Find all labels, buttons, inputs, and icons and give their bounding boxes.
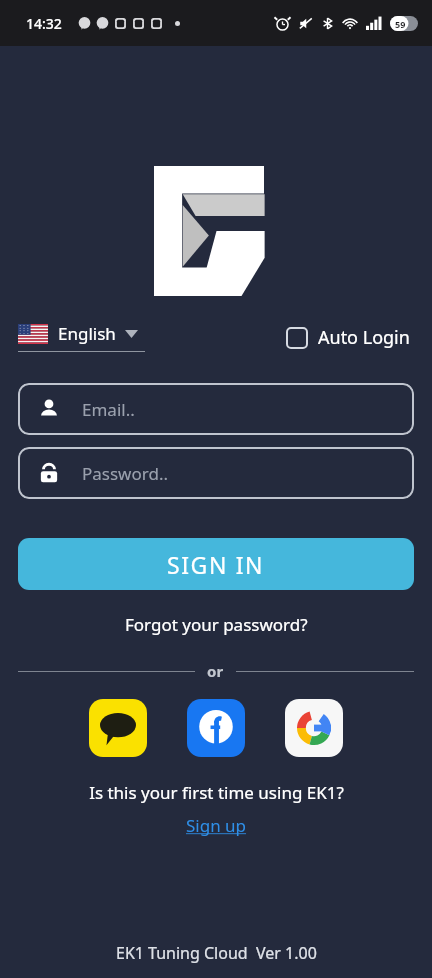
button[interactable]: SIGN IN [18,538,414,590]
staticText: English [58,322,116,345]
staticText: Auto Login [318,325,410,350]
button[interactable]: Sign in with Facebook [187,699,245,757]
button[interactable]: English [18,320,145,354]
staticText: SIGN IN [167,549,265,580]
button[interactable]: Password.. [18,447,414,499]
button[interactable]: Email.. [18,383,414,435]
button[interactable]: Forgot your password? [115,610,318,639]
button[interactable]: Sign up [178,812,255,839]
button[interactable]: Sign in with Kakao [89,699,147,757]
button[interactable]: Auto Login [282,321,414,354]
staticText: Is this your first time using EK1? [89,781,344,804]
staticText: Password.. [82,462,169,485]
button[interactable]: Sign in with Google [285,699,343,757]
staticText: or [207,661,224,681]
staticText: EK1 Tuning Cloud Ver 1.00 [116,942,317,964]
staticText: 59 [395,18,406,30]
staticText: Email.. [82,398,135,421]
staticText: 14:32 [26,14,62,33]
